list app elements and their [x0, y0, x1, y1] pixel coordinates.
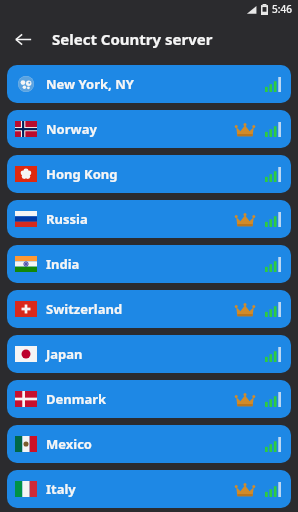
staticText: New York, NY [46, 75, 134, 93]
staticText: Italy [46, 480, 76, 498]
staticText: Russia [46, 210, 88, 228]
button[interactable]: New York, NY [7, 65, 291, 103]
staticText: 5:46 [272, 2, 292, 16]
button[interactable]: Italy [7, 470, 291, 508]
staticText: Hong Kong [46, 165, 118, 183]
button[interactable]: Hong Kong [7, 155, 291, 193]
button[interactable]: Russia [7, 200, 291, 238]
button[interactable]: Japan [7, 335, 291, 373]
button[interactable]: Norway [7, 110, 291, 148]
staticText: Switzerland [46, 300, 123, 318]
staticText: India [46, 255, 80, 273]
staticText: Denmark [46, 390, 107, 408]
staticText: Japan [46, 345, 83, 363]
button[interactable]: Denmark [7, 380, 291, 418]
staticText: Norway [46, 120, 97, 138]
button[interactable]: India [7, 245, 291, 283]
staticText: Select Country server [52, 29, 213, 49]
staticText: Mexico [46, 435, 92, 453]
button[interactable]: Back [6, 22, 40, 56]
button[interactable]: Switzerland [7, 290, 291, 328]
button[interactable]: Mexico [7, 425, 291, 463]
